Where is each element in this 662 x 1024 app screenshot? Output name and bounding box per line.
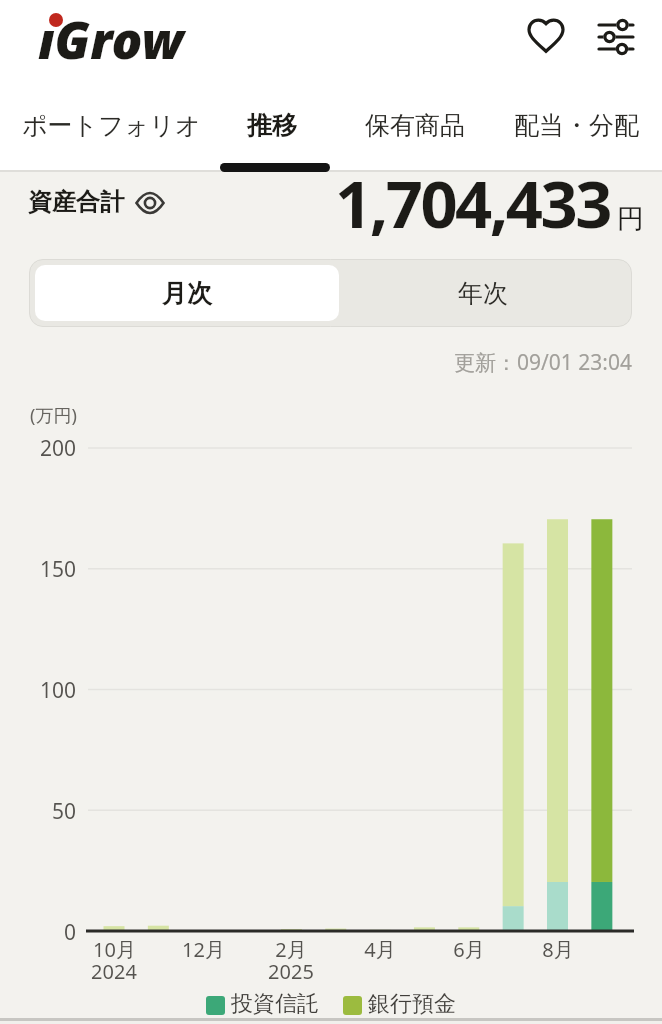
staticText: 月次 xyxy=(162,278,212,309)
staticText: 年次 xyxy=(458,278,508,309)
staticText: 8月 xyxy=(542,936,574,963)
staticText: 200 xyxy=(39,434,76,463)
staticText: ıGrow xyxy=(38,4,184,73)
button[interactable]: ıGrow xyxy=(38,4,184,73)
staticText: (万円) xyxy=(30,403,77,428)
staticText: 2月 xyxy=(275,936,307,963)
button[interactable]: 推移 xyxy=(247,110,297,141)
button[interactable]: 月次 xyxy=(35,265,339,321)
button[interactable]: 保有商品 xyxy=(365,110,465,141)
button[interactable] xyxy=(594,15,638,59)
staticText: 投資信託 xyxy=(231,990,319,1018)
staticText: 100 xyxy=(39,676,76,705)
button[interactable] xyxy=(522,13,570,61)
button[interactable] xyxy=(135,191,167,216)
staticText: 0 xyxy=(63,918,76,947)
button[interactable]: ポートフォリオ xyxy=(22,110,201,141)
staticText: 更新：09/01 23:04 xyxy=(454,348,632,377)
staticText: 50 xyxy=(51,797,76,826)
staticText: 4月 xyxy=(364,936,396,963)
staticText: 2025 xyxy=(268,958,314,985)
staticText: 資産合計 xyxy=(28,187,124,217)
staticText: 6月 xyxy=(453,936,485,963)
staticText: 10月 xyxy=(93,936,136,963)
staticText: 1,704,433 円 xyxy=(335,159,644,248)
staticText: 12月 xyxy=(182,936,225,963)
button[interactable]: 年次 xyxy=(339,265,626,321)
button[interactable]: 配当・分配 xyxy=(514,110,639,141)
staticText: 銀行預金 xyxy=(368,990,456,1018)
staticText: 150 xyxy=(39,555,76,584)
staticText: 2024 xyxy=(91,958,137,985)
